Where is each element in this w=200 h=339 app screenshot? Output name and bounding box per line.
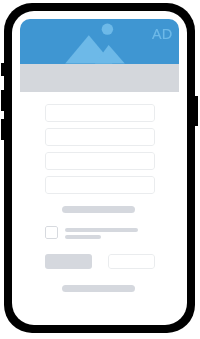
button[interactable]: Text input field <box>45 176 155 194</box>
button[interactable]: Text input field <box>45 104 155 122</box>
button[interactable]: Primary button <box>45 254 92 269</box>
button[interactable]: Checkbox option <box>45 226 155 242</box>
button[interactable]: Secondary button <box>108 254 155 269</box>
button[interactable]: Text input field <box>45 152 155 170</box>
button[interactable]: Advertisement banner <box>20 19 179 64</box>
button[interactable]: Text input field <box>45 128 155 146</box>
staticText: AD <box>152 23 173 43</box>
